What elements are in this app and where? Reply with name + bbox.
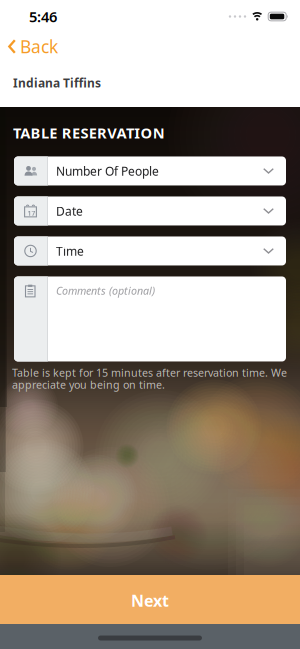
staticText: 5:46 [29,7,57,26]
button[interactable]: Time [14,236,286,265]
button[interactable]: 17 [14,196,286,225]
staticText: appreciate you being on time. [12,378,165,392]
button[interactable]: Comments (optional) [14,276,286,361]
staticText: Comments (optional) [56,283,155,298]
staticText: Number Of People [56,163,159,179]
staticText: Indiana Tiffins [13,75,101,91]
button[interactable]: Next [0,575,300,624]
staticText: Back [20,35,58,58]
staticText: Date [56,203,83,219]
staticText: Time [56,243,84,259]
staticText: Table is kept for 15 minutes after reser… [12,365,287,380]
button[interactable]: Back [0,35,58,58]
staticText: TABLE RESERVATION [13,123,165,142]
staticText: 17 [27,209,35,218]
button[interactable]: Number Of People [14,156,286,185]
staticText: Next [131,590,169,611]
